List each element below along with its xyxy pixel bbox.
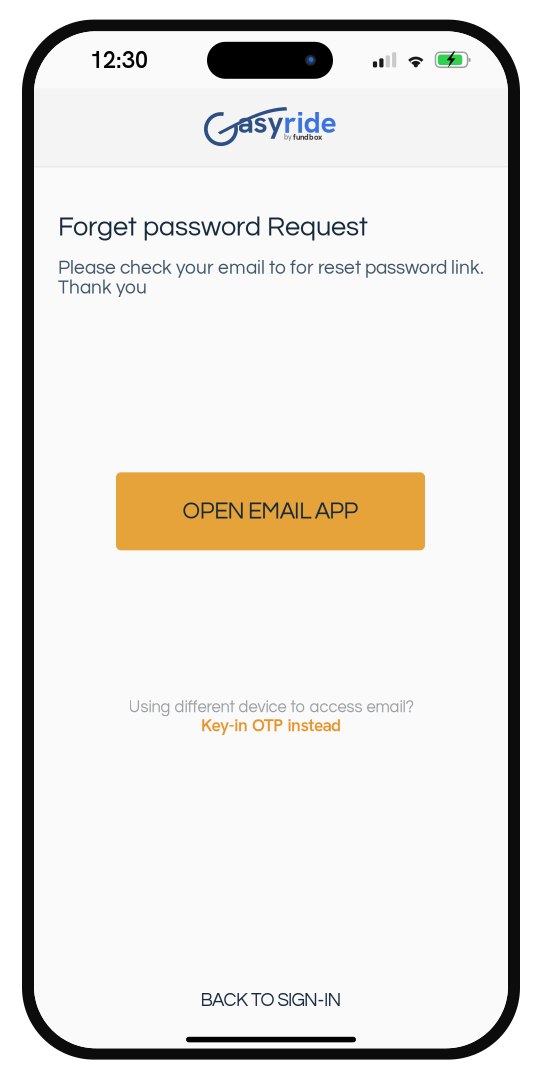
staticText: by — [284, 132, 292, 142]
staticText: BACK TO SIGN-IN — [200, 991, 341, 1010]
staticText: Key-in OTP instead — [201, 714, 341, 736]
staticText: Forget password Request — [58, 213, 368, 241]
button[interactable]: Key-in OTP instead — [201, 714, 341, 736]
staticText: Please check your email to for reset pas… — [58, 258, 484, 297]
staticText: asy — [237, 103, 283, 142]
staticText: Using different device to access email? — [128, 699, 413, 716]
button[interactable]: BACK TO SIGN-IN — [34, 983, 508, 1017]
staticText: ride — [283, 103, 336, 142]
staticText: OPEN EMAIL APP — [183, 499, 358, 523]
staticText: fundbox — [293, 132, 322, 142]
staticText: 12:30 — [90, 45, 148, 75]
button[interactable]: OPEN EMAIL APP — [116, 472, 425, 550]
